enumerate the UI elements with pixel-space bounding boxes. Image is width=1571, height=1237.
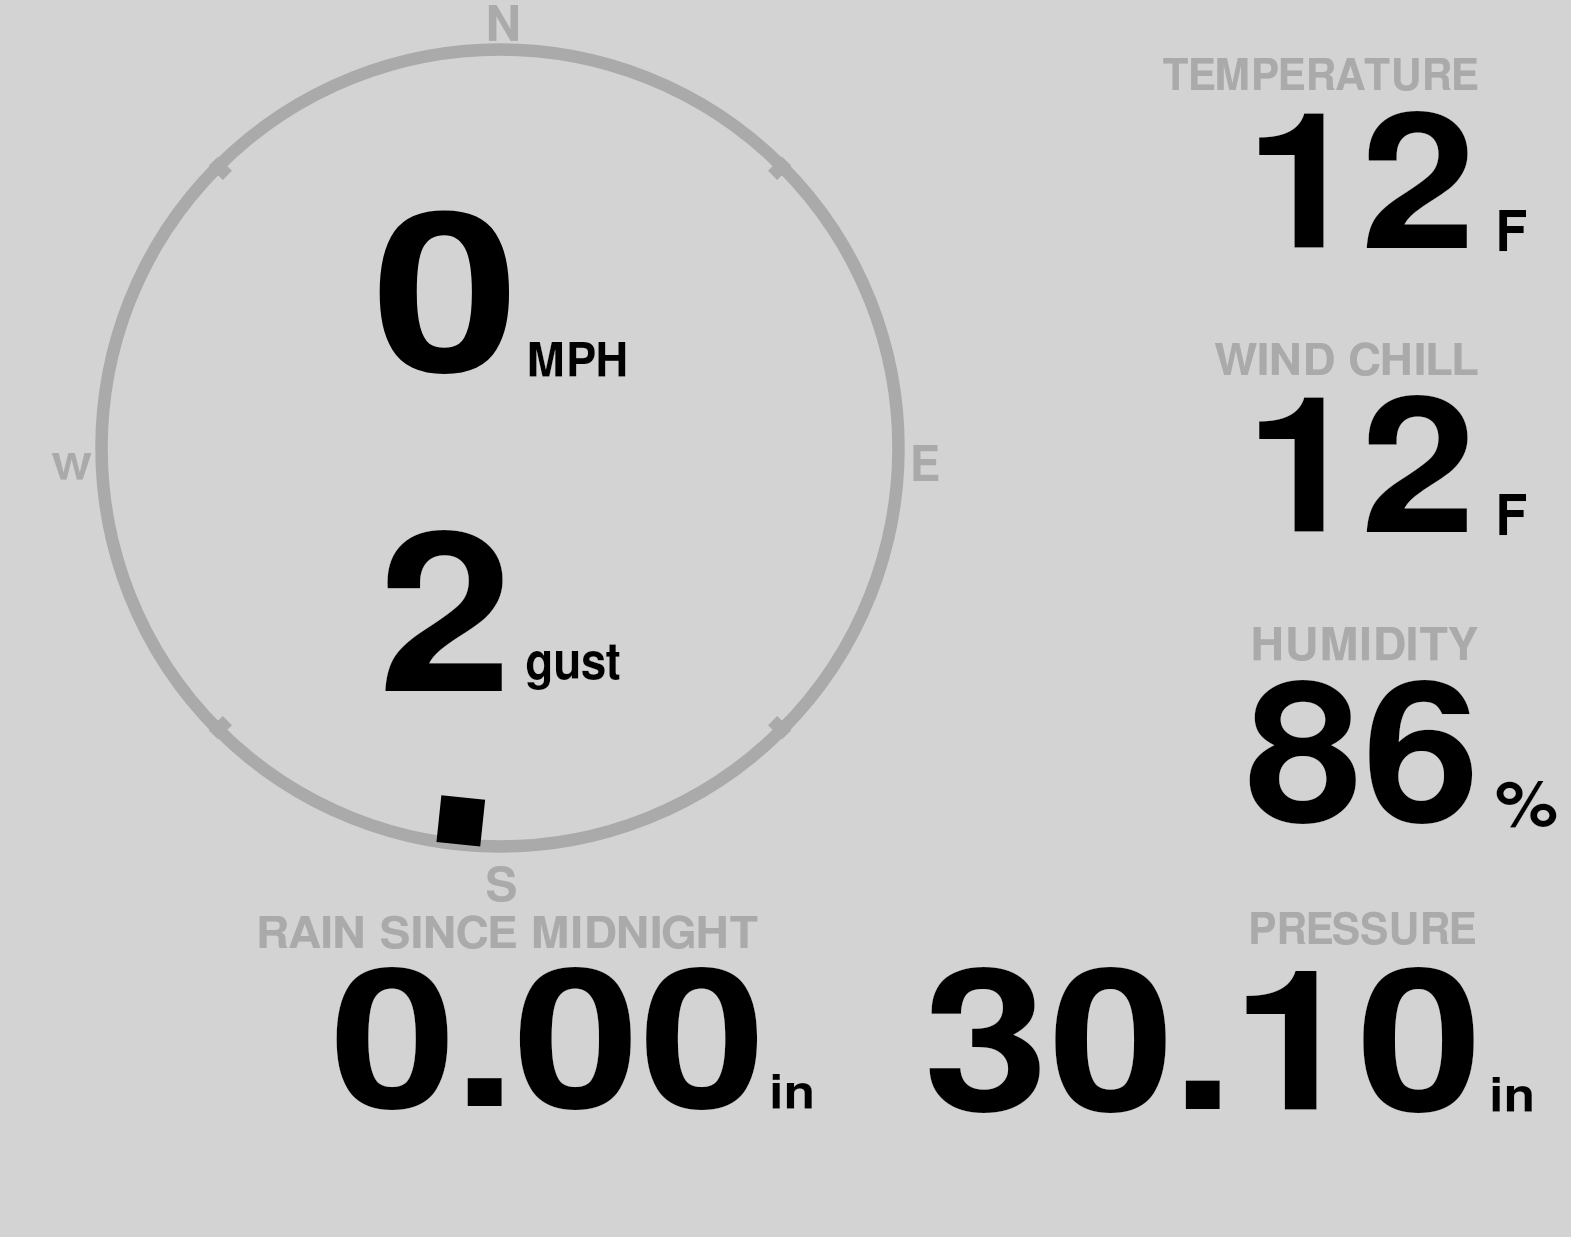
staticText: MPH: [526, 339, 629, 387]
staticText: S: [485, 863, 518, 911]
button[interactable]: Humidity 86 percent: [1140, 615, 1571, 870]
staticText: E: [910, 442, 940, 491]
staticText: in: [769, 1071, 815, 1118]
staticText: HUMIDITY: [1250, 624, 1479, 669]
staticText: gust: [525, 638, 621, 689]
staticText: F: [1495, 489, 1529, 546]
staticText: WIND CHILL: [1214, 341, 1480, 384]
staticText: %: [1495, 775, 1558, 839]
staticText: RAIN SINCE MIDNIGHT: [256, 914, 759, 957]
staticText: N: [485, 2, 522, 51]
button[interactable]: Wind direction compass, 0 miles per hour…: [95, 40, 910, 910]
staticText: in: [1489, 1074, 1535, 1121]
staticText: TEMPERATURE: [1162, 55, 1479, 99]
button[interactable]: Wind chill 12 degrees Fahrenheit: [1140, 330, 1571, 585]
staticText: 12: [1245, 97, 1477, 286]
button[interactable]: Rain since midnight 0.00 inches: [240, 900, 840, 1130]
staticText: 12: [1245, 381, 1477, 570]
staticText: W: [51, 450, 93, 487]
staticText: 0: [372, 194, 520, 413]
staticText: F: [1495, 205, 1529, 262]
staticText: 2: [378, 513, 513, 735]
staticText: 30.10: [923, 953, 1483, 1148]
button[interactable]: Temperature 12 degrees Fahrenheit: [1140, 45, 1571, 300]
button[interactable]: Pressure 30.10 inches: [900, 900, 1560, 1130]
staticText: 86: [1245, 666, 1480, 858]
staticText: 0.00: [330, 953, 767, 1144]
staticText: PRESSURE: [1248, 909, 1477, 953]
